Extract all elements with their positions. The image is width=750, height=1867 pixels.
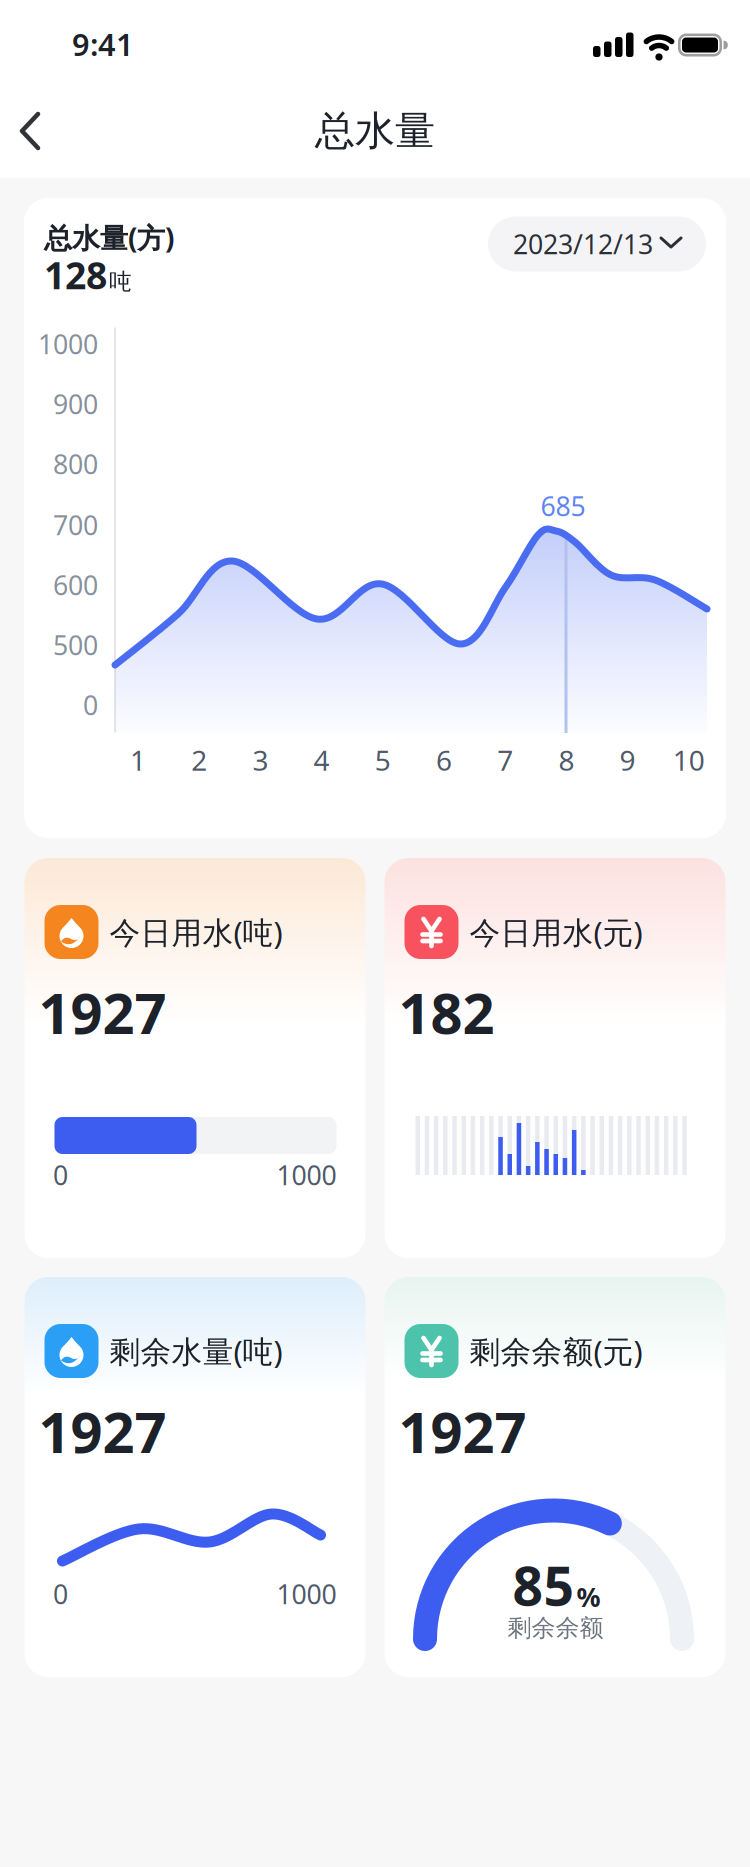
staticText: 2023/12/13 [513,226,653,262]
staticText: 7 [497,741,513,779]
staticText: 800 [53,446,98,482]
staticText: 900 [53,386,98,422]
staticText: 1 [130,741,146,779]
staticText: 685 [540,488,585,524]
staticText: 5 [375,741,391,779]
staticText: 剩余余额(元) [469,1331,642,1371]
staticText: 1000 [276,1157,336,1193]
button[interactable]: Back [0,88,750,178]
staticText: 4 [314,741,330,779]
staticText: 600 [53,567,98,603]
staticText: 6 [436,741,452,779]
staticText: 0 [53,1576,68,1612]
staticText: 今日用水(元) [469,912,642,952]
staticText: % [576,1579,600,1614]
staticText: 2 [191,741,207,779]
staticText: 1000 [38,326,98,362]
staticText: 今日用水(吨) [109,912,282,952]
staticText: 700 [53,507,98,543]
staticText: 3 [252,741,268,779]
staticText: 0 [53,1157,68,1193]
staticText: 1000 [276,1576,336,1612]
staticText: 128 [44,250,107,300]
staticText: 剩余水量(吨) [109,1331,282,1371]
button[interactable]: Select date [488,216,706,271]
staticText: 85 [512,1550,574,1620]
staticText: 9:41 [72,24,134,64]
staticText: 总水量 [315,106,435,155]
staticText: 182 [398,975,494,1049]
staticText: 剩余余额 [507,1613,603,1643]
staticText: 1927 [398,1394,526,1468]
staticText: 500 [53,627,98,663]
staticText: 8 [558,741,574,779]
staticText: 总水量(方) [44,219,174,256]
staticText: 吨 [109,268,132,295]
staticText: 1927 [38,975,166,1049]
staticText: 0 [83,687,98,723]
staticText: 10 [673,741,705,779]
staticText: 1927 [38,1394,166,1468]
staticText: 9 [620,741,636,779]
